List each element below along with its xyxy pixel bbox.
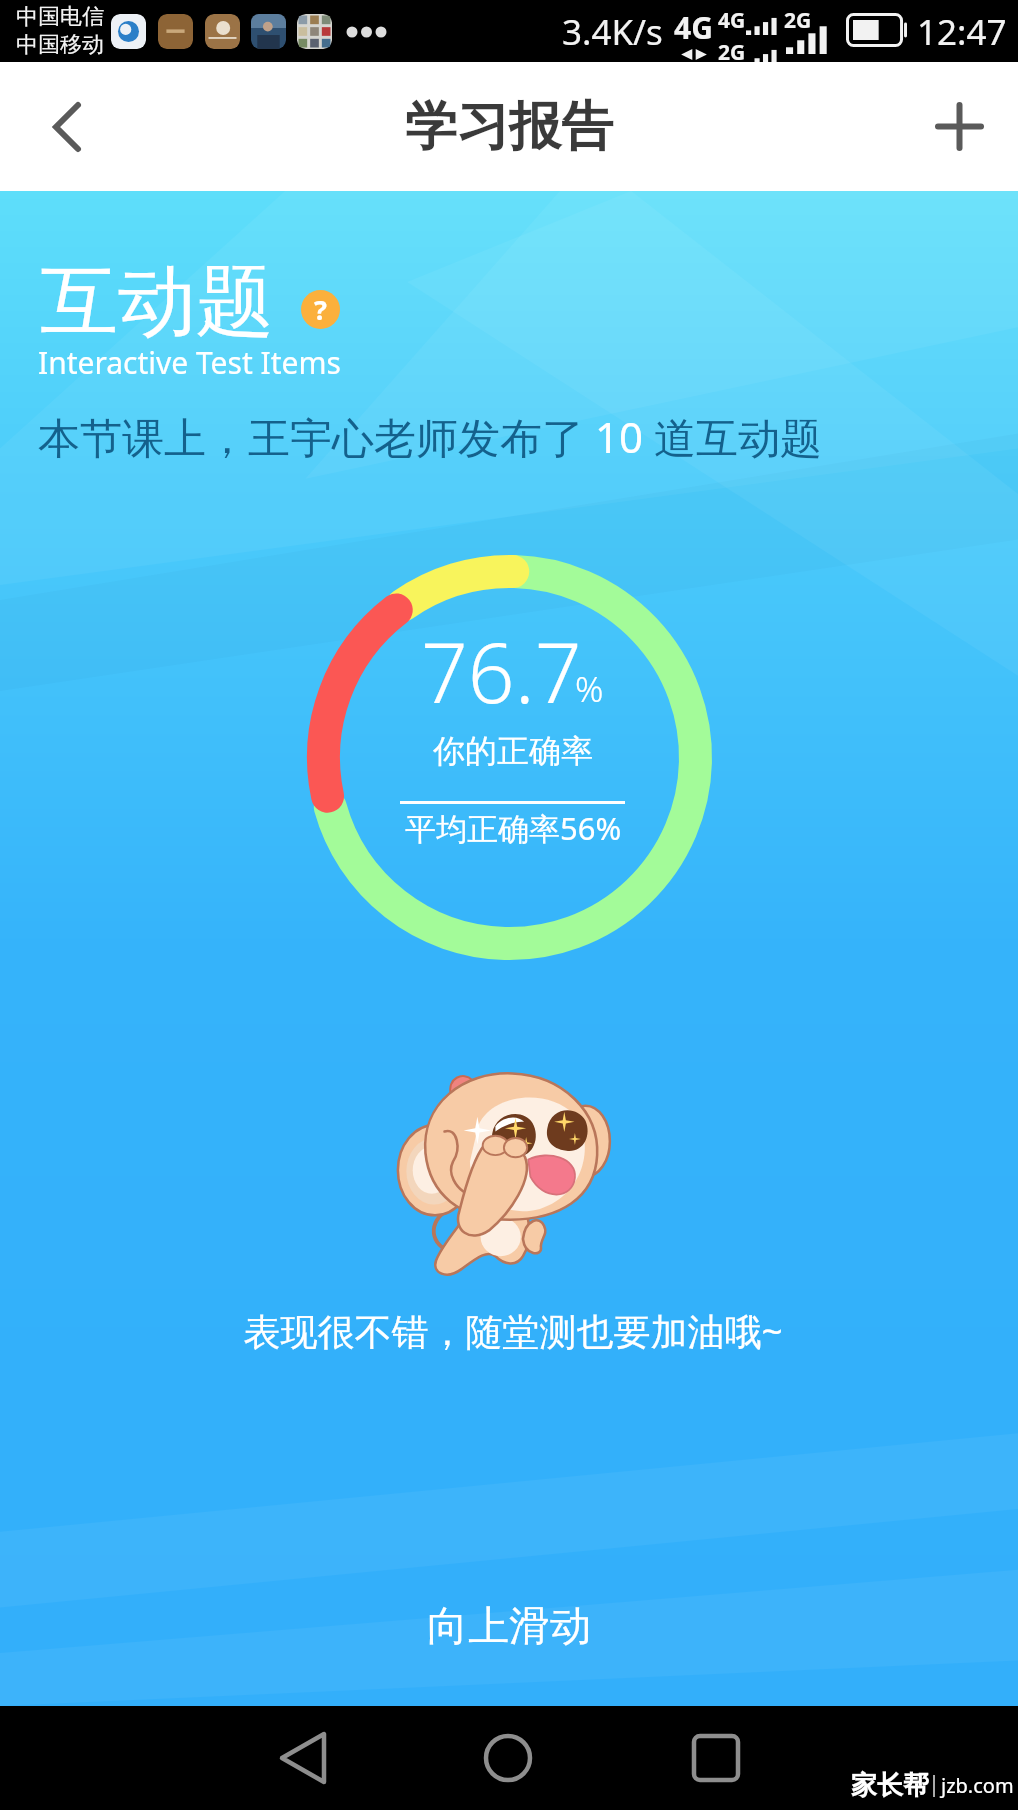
button[interactable]: Recents xyxy=(656,1706,776,1810)
button[interactable]: Home xyxy=(448,1706,568,1810)
staticText: jzb.com xyxy=(941,1772,1014,1799)
staticText: 12:47 xyxy=(917,8,1007,56)
staticText: 你的正确率 xyxy=(433,731,593,771)
button[interactable]: Back xyxy=(243,1706,363,1810)
staticText: 家长帮 xyxy=(851,1769,929,1802)
staticText: 3.4K/s xyxy=(562,8,663,56)
staticText: 中国电信 xyxy=(16,3,104,31)
staticText: 表现很不错，随堂测也要加油哦~ xyxy=(243,1305,783,1356)
staticText: 互动题 xyxy=(40,253,274,351)
staticText: 学习报告 xyxy=(405,94,613,160)
staticText: 平均正确率56% xyxy=(405,807,622,849)
staticText: 2G xyxy=(784,6,812,35)
staticText: 76.7 xyxy=(421,615,582,727)
staticText: 中国移动 xyxy=(16,31,104,59)
staticText: 向上滑动 xyxy=(427,1601,591,1653)
staticText: 本节课上，王宇心老师发布了 10 道互动题 xyxy=(38,408,822,465)
staticText: Interactive Test Items xyxy=(38,342,341,383)
staticText: % xyxy=(575,665,604,713)
button[interactable]: Add xyxy=(904,62,1014,191)
staticText: 2G xyxy=(718,38,746,67)
staticText: 4G xyxy=(718,6,746,35)
button[interactable]: Back xyxy=(12,62,122,191)
staticText: ? xyxy=(314,291,327,328)
staticText: 4G xyxy=(674,7,713,48)
button[interactable]: Help xyxy=(301,290,340,329)
